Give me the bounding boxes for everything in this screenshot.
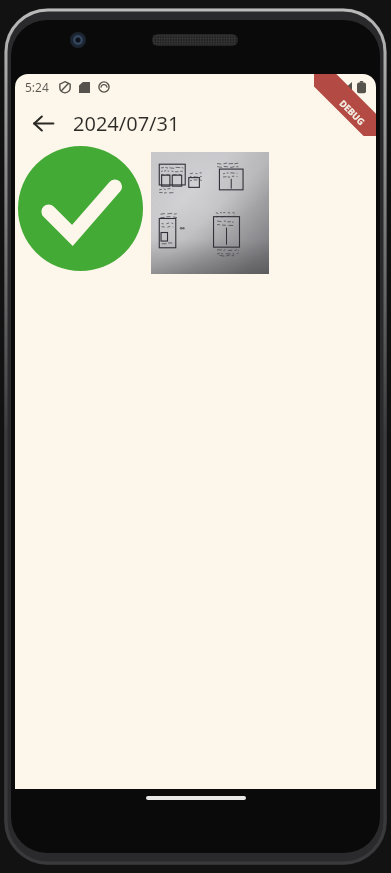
button[interactable]: Attached photo <box>151 152 269 274</box>
staticText: 2024/07/31 <box>73 110 180 137</box>
staticText: 5:24 <box>25 79 49 95</box>
button[interactable]: Upload succeeded <box>18 146 143 271</box>
button[interactable]: Back <box>23 103 63 143</box>
staticText: DEBUG <box>337 97 368 127</box>
